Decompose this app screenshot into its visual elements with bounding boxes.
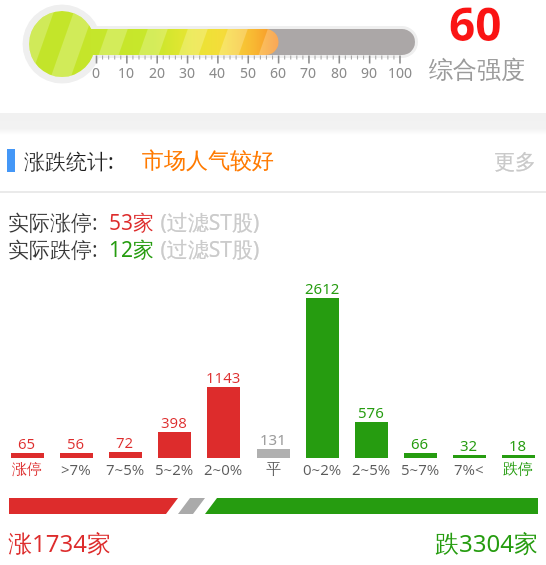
staticText: 7%<	[454, 459, 484, 479]
staticText: 平	[266, 460, 281, 479]
staticText: 50	[240, 63, 257, 82]
staticText: 5~7%	[401, 459, 440, 479]
staticText: 65	[18, 433, 36, 453]
staticText: 576	[358, 402, 384, 422]
staticText: 0	[92, 63, 101, 82]
staticText: 20	[149, 63, 166, 82]
staticText: 398	[161, 412, 187, 432]
staticText: 60	[270, 63, 287, 82]
staticText: 跌停	[503, 460, 533, 479]
staticText: 72	[116, 432, 134, 452]
button[interactable]	[0, 145, 546, 178]
staticText: 66	[411, 433, 429, 453]
staticText: 实际跌停:	[8, 235, 109, 264]
staticText: 涨1734家	[8, 526, 111, 559]
staticText: >7%	[61, 459, 91, 479]
staticText: 跌3304家	[435, 526, 538, 559]
staticText: 32	[460, 435, 478, 455]
staticText: 60	[449, 0, 502, 52]
staticText: 更多	[494, 149, 536, 175]
staticText: 90	[361, 63, 378, 82]
staticText: 56	[67, 433, 85, 453]
staticText: 2~0%	[204, 459, 243, 479]
staticText: 70	[300, 63, 317, 82]
staticText: (过滤ST股)	[155, 208, 260, 237]
staticText: 40	[209, 63, 226, 82]
staticText: 实际涨停:	[8, 208, 109, 237]
staticText: 53家	[109, 208, 155, 237]
staticText: 5~2%	[155, 459, 194, 479]
staticText: 2612	[305, 278, 340, 298]
staticText: 1143	[206, 367, 241, 387]
staticText: 0~2%	[303, 459, 342, 479]
staticText: 18	[509, 435, 527, 455]
staticText: 涨跌统计:	[24, 147, 114, 176]
staticText: (过滤ST股)	[155, 235, 260, 264]
staticText: 2~5%	[352, 459, 391, 479]
button[interactable]: 更多	[466, 142, 536, 182]
staticText: 30	[179, 63, 196, 82]
staticText: 80	[331, 63, 348, 82]
staticText: 100	[388, 63, 413, 82]
staticText: 131	[260, 429, 286, 449]
staticText: 市场人气较好	[142, 147, 274, 175]
staticText: 涨停	[12, 460, 42, 479]
staticText: 7~5%	[106, 459, 145, 479]
staticText: 综合强度	[429, 55, 525, 85]
staticText: 12家	[109, 235, 155, 264]
staticText: 10	[118, 63, 135, 82]
